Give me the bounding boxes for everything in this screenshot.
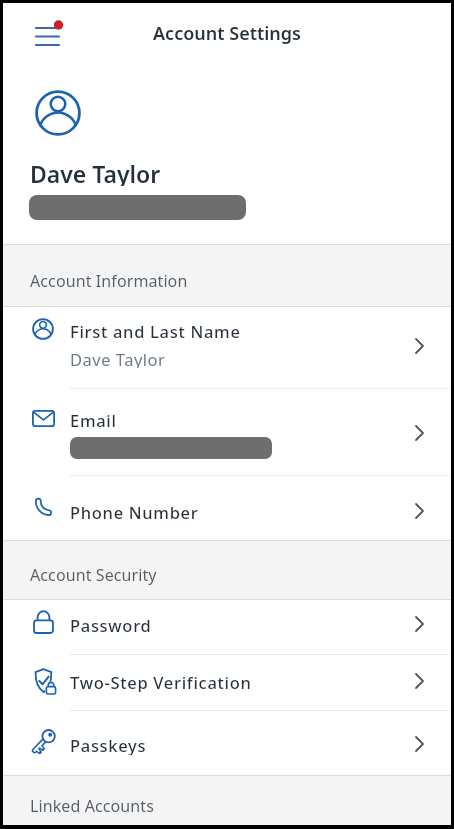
staticText: Linked Accounts	[30, 795, 154, 817]
staticText: Email	[70, 409, 117, 430]
staticText: Phone Number	[70, 501, 199, 522]
button[interactable]	[26, 8, 66, 52]
staticText: Dave Taylor	[30, 158, 161, 186]
staticText: Account Information	[30, 270, 188, 292]
button[interactable]: Two-Step Verification	[0, 655, 454, 710]
button[interactable]: Phone Number	[0, 476, 454, 540]
button[interactable]: Email	[0, 389, 454, 475]
staticText: Account Security	[30, 564, 157, 586]
staticText: Passkeys	[70, 734, 147, 755]
staticText: Password	[70, 614, 152, 635]
button[interactable]: Passkeys	[0, 711, 454, 775]
button[interactable]: Password	[0, 600, 454, 654]
staticText: Two-Step Verification	[70, 671, 252, 692]
button[interactable]: First and Last Name	[0, 307, 454, 388]
staticText: Dave Taylor	[70, 348, 166, 368]
staticText: First and Last Name	[70, 320, 241, 341]
staticText: Account Settings	[153, 21, 301, 46]
